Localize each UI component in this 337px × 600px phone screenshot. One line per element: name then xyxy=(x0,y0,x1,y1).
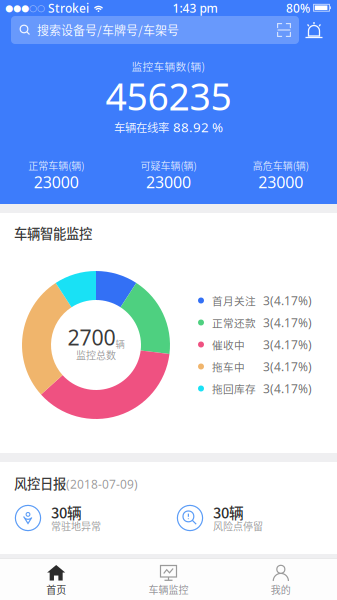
button[interactable]: 首页 xyxy=(0,559,112,599)
staticText: ●●● xyxy=(5,3,29,13)
staticText: 催收中 xyxy=(212,337,245,352)
staticText: 车辆智能监控 xyxy=(14,223,92,243)
staticText: 辆 xyxy=(115,337,124,350)
button[interactable]: 搜索设备号/车牌号/车架号 xyxy=(11,16,299,44)
staticText: 拖车中 xyxy=(212,359,245,374)
button[interactable]: 30辆 xyxy=(176,503,316,533)
staticText: 监控车辆数(辆) xyxy=(131,58,205,74)
staticText: 30辆 xyxy=(51,501,82,523)
staticText: 80% xyxy=(286,0,310,16)
button[interactable]: Alarms xyxy=(299,16,329,44)
staticText: 拖回库存 xyxy=(212,381,256,396)
staticText: 30辆 xyxy=(213,501,244,523)
staticText: 我的 xyxy=(271,582,291,597)
staticText: 监控总数 xyxy=(76,348,116,362)
staticText: 23000 xyxy=(34,171,79,193)
staticText: 首月关注 xyxy=(212,293,256,308)
staticText: 首页 xyxy=(46,582,66,597)
staticText: 3(4.17%) xyxy=(263,292,312,308)
staticText: 车辆监控 xyxy=(148,582,188,597)
staticText: 搜索设备号/车牌号/车架号 xyxy=(37,21,179,39)
staticText: 2700 xyxy=(67,323,115,351)
staticText: 风险点停留 xyxy=(213,519,263,533)
staticText: 常驻地异常 xyxy=(51,519,101,533)
staticText: 3(4.17%) xyxy=(263,380,312,396)
staticText: 正常车辆(辆) xyxy=(28,158,84,173)
staticText: 23000 xyxy=(146,171,191,193)
button[interactable]: 我的 xyxy=(225,559,337,599)
staticText: 车辆在线率 xyxy=(114,119,169,135)
button[interactable]: 车辆监控 xyxy=(112,559,225,599)
staticText: Strokei xyxy=(45,0,89,16)
staticText: 456235 xyxy=(105,71,231,121)
staticText: 88.92 % xyxy=(173,118,223,136)
staticText: 可疑车辆(辆) xyxy=(140,158,196,173)
staticText: 风控日报 xyxy=(14,473,66,493)
staticText: 正常还款 xyxy=(212,315,256,330)
staticText: 1:43 pm xyxy=(172,0,217,16)
staticText: 3(4.17%) xyxy=(263,314,312,330)
staticText: 23000 xyxy=(258,171,303,193)
staticText: ○○ xyxy=(29,3,45,13)
staticText: 3(4.17%) xyxy=(263,336,312,352)
button[interactable]: 30辆 xyxy=(14,503,154,533)
staticText: 3(4.17%) xyxy=(263,358,312,374)
staticText: 高危车辆(辆) xyxy=(253,158,309,173)
staticText: (2018-07-09) xyxy=(66,476,138,492)
